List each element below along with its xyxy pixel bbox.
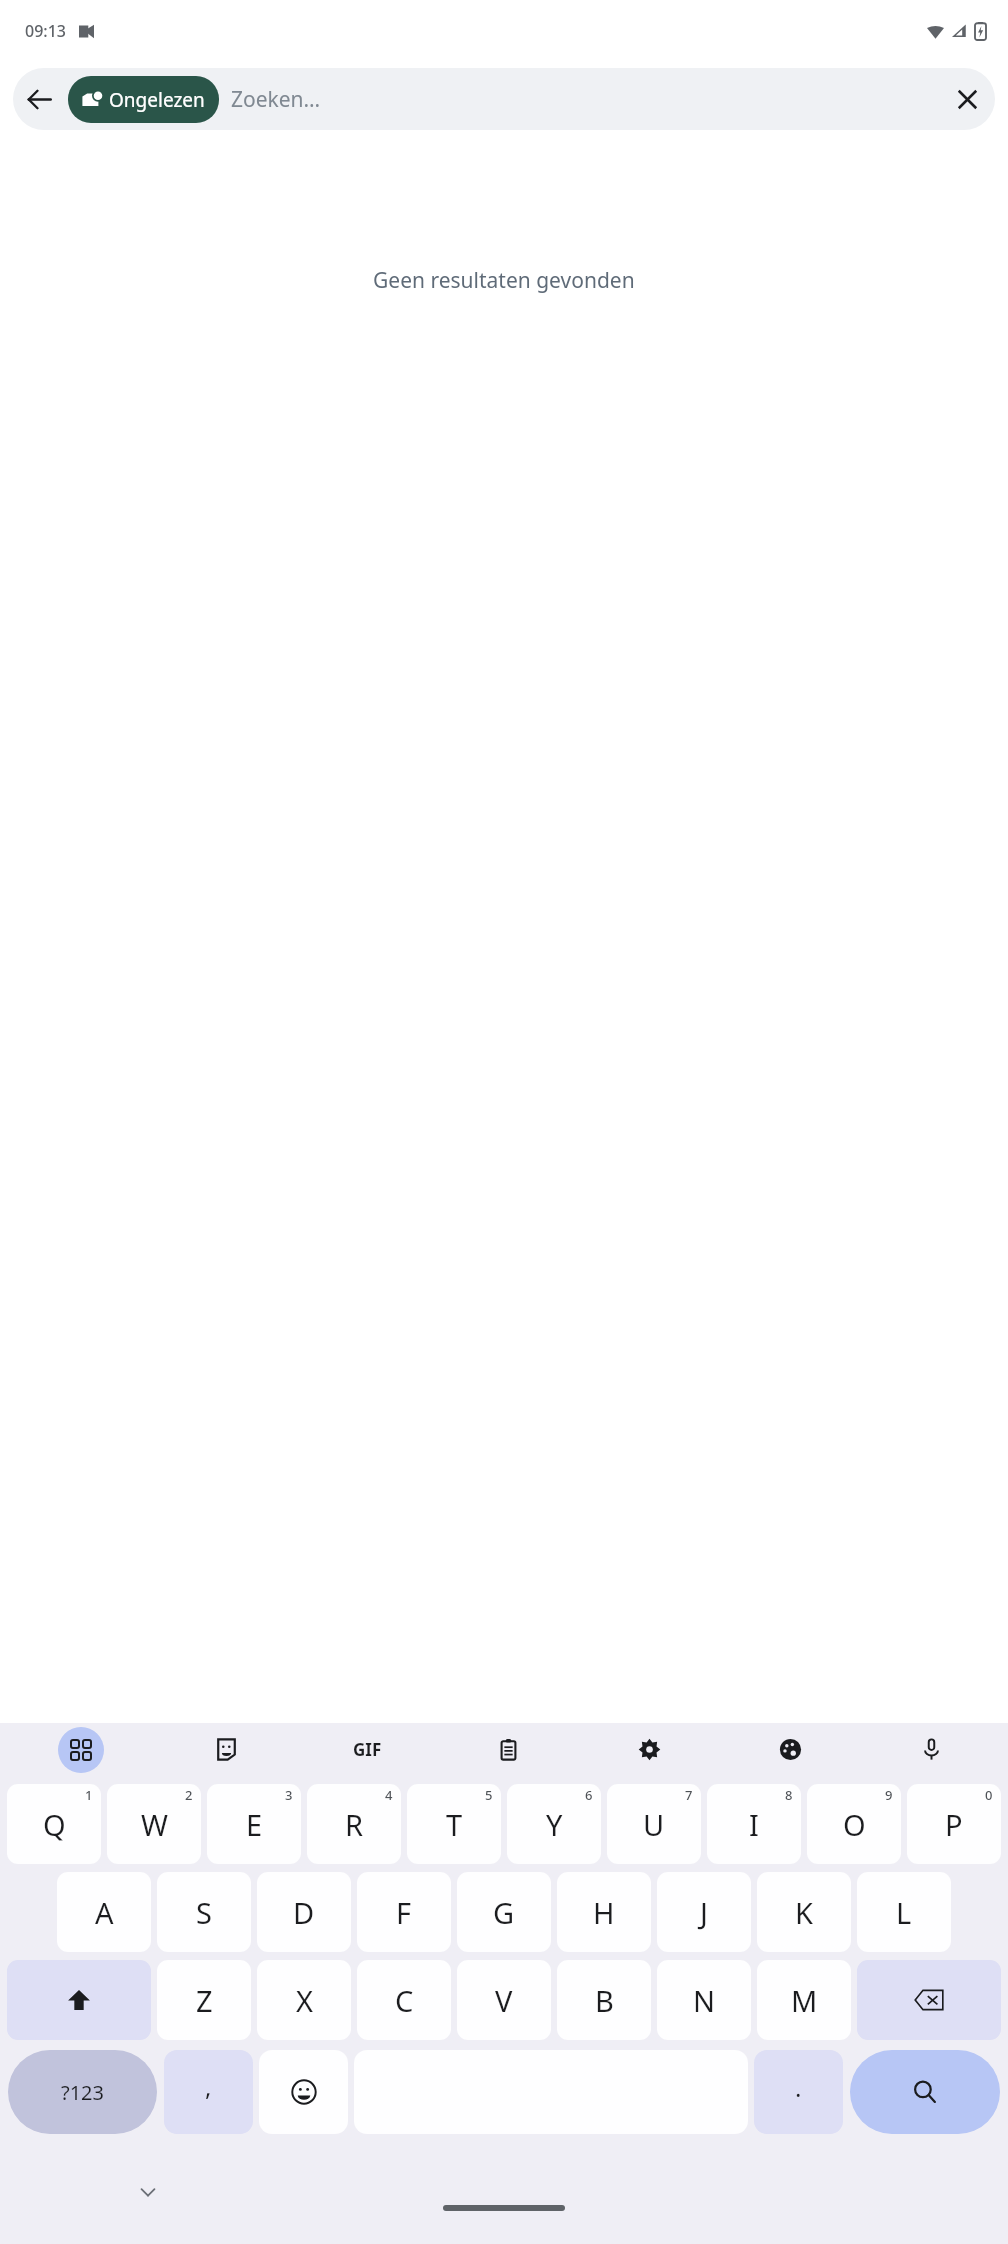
staticText: 0 bbox=[985, 1786, 993, 1804]
button[interactable]: L bbox=[857, 1872, 951, 1952]
staticText: , bbox=[205, 2070, 212, 2103]
button[interactable]: O bbox=[807, 1784, 901, 1864]
staticText: 4 bbox=[385, 1786, 393, 1804]
staticText: GIF bbox=[353, 1738, 382, 1761]
staticText: 9 bbox=[885, 1786, 893, 1804]
button[interactable]: C bbox=[357, 1960, 451, 2040]
button[interactable]: E bbox=[207, 1784, 301, 1864]
button[interactable]: Y bbox=[507, 1784, 601, 1864]
staticText: W bbox=[141, 1805, 168, 1844]
button[interactable]: Shift bbox=[7, 1960, 151, 2040]
button[interactable]: H bbox=[557, 1872, 651, 1952]
button[interactable]: Hide keyboard bbox=[125, 2169, 171, 2215]
button[interactable]: mic bbox=[861, 1723, 1002, 1776]
staticText: B bbox=[595, 1981, 614, 2020]
staticText: Zoeken… bbox=[231, 85, 939, 114]
button[interactable]: F bbox=[357, 1872, 451, 1952]
staticText: M bbox=[791, 1981, 818, 2020]
staticText: 8 bbox=[785, 1786, 793, 1804]
staticText: Q bbox=[43, 1805, 66, 1844]
staticText: Y bbox=[546, 1805, 563, 1844]
staticText: P bbox=[945, 1805, 963, 1844]
button[interactable]: settings bbox=[579, 1723, 720, 1776]
button[interactable]: Toggle keyboard tools bbox=[6, 1723, 155, 1776]
button[interactable]: T bbox=[407, 1784, 501, 1864]
button[interactable]: Ongelezen bbox=[68, 76, 219, 123]
staticText: U bbox=[643, 1805, 665, 1844]
button[interactable]: , bbox=[164, 2050, 253, 2134]
staticText: 5 bbox=[485, 1786, 493, 1804]
button[interactable]: Back bbox=[13, 73, 65, 125]
button[interactable]: G bbox=[457, 1872, 551, 1952]
staticText: E bbox=[246, 1805, 263, 1844]
button[interactable]: J bbox=[657, 1872, 751, 1952]
button[interactable]: W bbox=[107, 1784, 201, 1864]
staticText: O bbox=[843, 1805, 866, 1844]
staticText: V bbox=[495, 1981, 513, 2020]
staticText: G bbox=[493, 1893, 515, 1932]
button[interactable]: Z bbox=[157, 1960, 251, 2040]
button[interactable]: Backspace bbox=[857, 1960, 1001, 2040]
staticText: . bbox=[795, 2071, 802, 2104]
staticText: 2 bbox=[185, 1786, 193, 1804]
staticText: Z bbox=[196, 1981, 213, 2020]
staticText: ?123 bbox=[61, 2079, 104, 2106]
staticText: 1 bbox=[85, 1786, 93, 1804]
button[interactable]: sticker bbox=[155, 1723, 297, 1776]
button[interactable]: Q bbox=[7, 1784, 101, 1864]
button[interactable]: P bbox=[907, 1784, 1001, 1864]
button[interactable]: A bbox=[57, 1872, 151, 1952]
button[interactable]: D bbox=[257, 1872, 351, 1952]
button[interactable]: U bbox=[607, 1784, 701, 1864]
button[interactable]: R bbox=[307, 1784, 401, 1864]
staticText: 3 bbox=[285, 1786, 293, 1804]
button[interactable]: clipboard bbox=[438, 1723, 579, 1776]
button[interactable]: Clear search bbox=[939, 71, 995, 127]
button[interactable]: ?123 bbox=[8, 2050, 157, 2134]
button[interactable]: N bbox=[657, 1960, 751, 2040]
staticText: X bbox=[296, 1981, 313, 2020]
staticText: C bbox=[395, 1981, 414, 2020]
button[interactable]: palette bbox=[720, 1723, 861, 1776]
button[interactable]: X bbox=[257, 1960, 351, 2040]
staticText: S bbox=[196, 1893, 212, 1932]
staticText: Geen resultaten gevonden bbox=[373, 266, 635, 295]
staticText: J bbox=[700, 1893, 708, 1932]
button[interactable]: B bbox=[557, 1960, 651, 2040]
button[interactable]: M bbox=[757, 1960, 851, 2040]
staticText: L bbox=[896, 1893, 912, 1932]
staticText: H bbox=[593, 1893, 615, 1932]
staticText: Ongelezen bbox=[109, 87, 205, 113]
staticText: T bbox=[446, 1805, 463, 1844]
staticText: 09:13 bbox=[25, 20, 66, 42]
button[interactable]: I bbox=[707, 1784, 801, 1864]
staticText: A bbox=[95, 1893, 114, 1932]
staticText: F bbox=[396, 1893, 412, 1932]
staticText: I bbox=[749, 1805, 759, 1844]
button[interactable]: Search bbox=[850, 2050, 1000, 2134]
button[interactable]: S bbox=[157, 1872, 251, 1952]
staticText: 7 bbox=[685, 1786, 693, 1804]
button[interactable]: Emoji bbox=[259, 2050, 348, 2134]
staticText: K bbox=[795, 1893, 813, 1932]
button[interactable]: . bbox=[754, 2050, 843, 2134]
button[interactable]: V bbox=[457, 1960, 551, 2040]
staticText: 6 bbox=[585, 1786, 593, 1804]
staticText: N bbox=[693, 1981, 716, 2020]
staticText: R bbox=[345, 1805, 364, 1844]
button[interactable]: gif bbox=[297, 1723, 438, 1776]
staticText: D bbox=[293, 1893, 315, 1932]
button[interactable]: K bbox=[757, 1872, 851, 1952]
